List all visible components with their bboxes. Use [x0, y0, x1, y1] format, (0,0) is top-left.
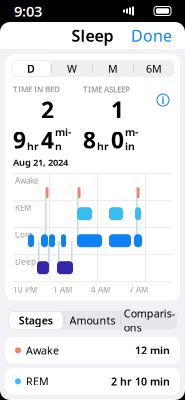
button[interactable]: D	[11, 61, 51, 76]
staticText: Stages	[19, 313, 53, 327]
button[interactable]: Done	[127, 22, 176, 49]
staticText: 1 AM	[53, 284, 72, 295]
staticText: 8	[83, 125, 96, 155]
staticText: 6M	[146, 61, 162, 76]
staticText: 7 AM	[129, 284, 148, 295]
staticText: W	[67, 61, 77, 76]
button[interactable]: Comparisons	[121, 312, 177, 329]
staticText: Aug 21, 2024	[13, 156, 68, 168]
staticText: Sleep	[71, 25, 113, 46]
staticText: M	[108, 61, 118, 76]
staticText: hr	[27, 139, 39, 153]
staticText: TIME IN BED	[13, 84, 60, 95]
button[interactable]: Amounts	[65, 312, 120, 329]
staticText: 12 min	[135, 343, 170, 357]
button[interactable]: Stages	[8, 312, 64, 329]
staticText: Core	[15, 229, 33, 240]
staticText: i	[161, 93, 164, 107]
staticText: Amounts	[69, 313, 115, 327]
button[interactable]: M	[93, 61, 133, 76]
staticText: 24	[41, 95, 54, 155]
staticText: Awake	[15, 175, 39, 186]
button[interactable]: Core	[5, 399, 180, 400]
staticText: Deep	[15, 256, 36, 267]
button[interactable]: Awake	[5, 337, 180, 364]
staticText: 9:03	[14, 1, 42, 21]
staticText: 2 hr 10 min	[111, 374, 170, 388]
staticText: 9	[13, 125, 26, 155]
staticText: 4 AM	[91, 284, 110, 295]
staticText: REM	[26, 374, 49, 388]
staticText: D	[27, 61, 35, 76]
staticText: 10	[111, 95, 124, 155]
button[interactable]: W	[52, 61, 92, 76]
staticText: min	[125, 125, 138, 153]
staticText: hr	[97, 139, 109, 153]
staticText: Awake	[26, 343, 59, 357]
staticText: Comparisons	[124, 306, 175, 334]
staticText: TIME ASLEEP	[83, 84, 130, 95]
button[interactable]: About sleep data	[154, 90, 172, 110]
button[interactable]: 6M	[134, 61, 174, 76]
staticText: Done	[131, 25, 172, 46]
staticText: 10 PM	[13, 284, 37, 295]
staticText: min	[55, 125, 71, 153]
staticText: REM	[15, 202, 31, 213]
button[interactable]: REM	[5, 368, 180, 395]
